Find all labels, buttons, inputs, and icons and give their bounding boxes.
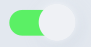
button[interactable]: Toggle xyxy=(0,0,91,47)
